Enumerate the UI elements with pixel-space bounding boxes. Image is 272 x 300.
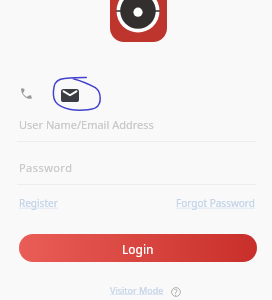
button[interactable]: Phone login: [20, 88, 32, 101]
button[interactable]: Register: [14, 192, 63, 214]
staticText: Forgot Password: [176, 196, 255, 210]
staticText: User Name/Email Address: [19, 117, 154, 132]
button[interactable]: Visitor Mode: [106, 281, 185, 299]
button[interactable]: Forgot Password: [171, 192, 260, 214]
button[interactable]: Login: [19, 234, 257, 262]
staticText: Visitor Mode: [110, 284, 164, 296]
staticText: Login: [122, 241, 154, 257]
staticText: ?: [174, 287, 178, 297]
button[interactable]: Email login: [61, 89, 79, 102]
staticText: Password: [19, 160, 73, 175]
staticText: Register: [19, 196, 58, 210]
